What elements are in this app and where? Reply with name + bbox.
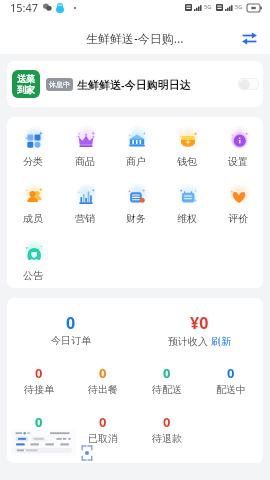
button[interactable]: Input panel: [11, 429, 76, 456]
staticText: 待接单: [24, 383, 54, 396]
staticText: ¥0: [190, 312, 209, 334]
staticText: 0: [163, 413, 171, 431]
button[interactable]: 分类: [7, 125, 59, 182]
button[interactable]: 0: [7, 312, 135, 347]
button[interactable]: 财务: [110, 182, 161, 239]
button[interactable]: 商户: [110, 125, 161, 182]
button[interactable]: 0: [135, 413, 199, 445]
staticText: 待退款: [152, 432, 182, 445]
button[interactable]: 0: [199, 364, 263, 396]
button[interactable]: Scan: [79, 444, 94, 462]
staticText: 0: [35, 364, 43, 382]
staticText: 预计收入: [168, 334, 211, 348]
button[interactable]: 公告: [7, 239, 59, 288]
staticText: 待出餐: [88, 383, 118, 396]
staticText: 配送中: [216, 383, 246, 396]
staticText: 生鲜鲜送-今日购明日达: [77, 77, 191, 92]
staticText: 生鲜鲜送-今日购...: [86, 30, 184, 46]
button[interactable]: 成员: [7, 182, 59, 239]
button[interactable]: 钱包: [161, 125, 212, 182]
staticText: 设置: [228, 155, 248, 168]
button[interactable]: 评价: [212, 182, 263, 239]
staticText: 到家: [17, 84, 35, 95]
button[interactable]: 0: [71, 413, 135, 445]
staticText: 商品: [75, 155, 95, 168]
staticText: 分类: [23, 155, 43, 168]
staticText: 财务: [126, 212, 146, 225]
staticText: 15:47: [10, 0, 39, 15]
staticText: 成员: [23, 212, 43, 225]
staticText: 5G: [204, 3, 212, 10]
staticText: 公告: [23, 269, 43, 282]
button[interactable]: 营销: [59, 182, 110, 239]
staticText: 送菜: [17, 73, 35, 84]
staticText: 维权: [177, 212, 197, 225]
staticText: 营销: [75, 212, 95, 225]
staticText: 0: [227, 364, 235, 382]
button[interactable]: Toggle store open: [238, 78, 259, 90]
staticText: 刷新: [211, 335, 231, 348]
staticText: 今日订单: [51, 334, 91, 347]
staticText: 0: [99, 364, 107, 382]
button[interactable]: 维权: [161, 182, 212, 239]
staticText: 已取消: [88, 432, 118, 445]
staticText: 0: [35, 413, 43, 431]
button[interactable]: 0: [7, 364, 71, 396]
staticText: 0: [163, 364, 171, 382]
staticText: 0: [99, 413, 107, 431]
staticText: 0: [66, 312, 76, 334]
staticText: 5G: [235, 3, 243, 10]
staticText: 评价: [228, 212, 248, 225]
button[interactable]: 0: [135, 364, 199, 396]
button[interactable]: 0: [71, 364, 135, 396]
button[interactable]: 0: [7, 413, 71, 445]
button[interactable]: 设置: [212, 125, 263, 182]
staticText: 待配送: [152, 383, 182, 396]
button[interactable]: Switch store: [236, 25, 262, 51]
staticText: 商户: [126, 155, 146, 168]
staticText: 已完成: [24, 432, 54, 445]
staticText: 钱包: [177, 155, 197, 168]
staticText: 休息中: [49, 80, 70, 89]
button[interactable]: ¥0: [135, 312, 263, 348]
button[interactable]: 商品: [59, 125, 110, 182]
